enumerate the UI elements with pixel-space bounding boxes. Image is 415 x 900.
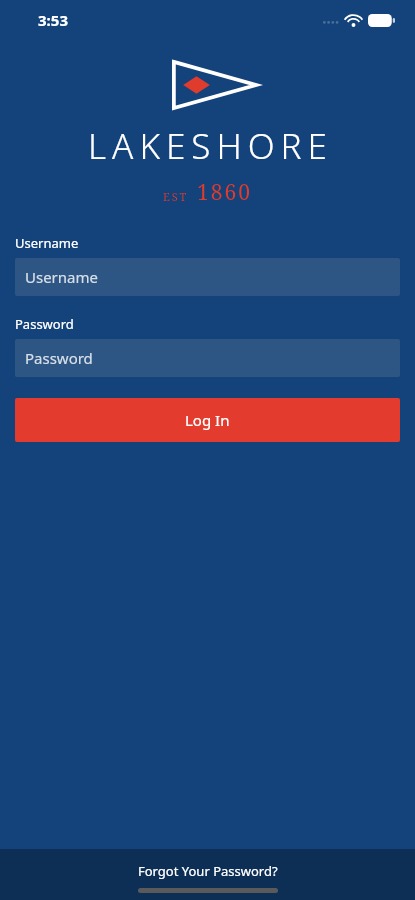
button[interactable]: Log In xyxy=(15,398,400,442)
staticText: 1860 xyxy=(197,178,252,207)
staticText: LAKESHORE xyxy=(88,122,333,170)
staticText: EST xyxy=(163,189,189,204)
staticText: Password xyxy=(25,348,93,368)
other: Lakeshore pennant logo xyxy=(172,60,258,110)
staticText: Username xyxy=(15,234,79,252)
staticText: Forgot Your Password? xyxy=(138,862,278,880)
staticText: 3:53 xyxy=(38,10,68,30)
staticText: Password xyxy=(15,315,74,333)
button[interactable]: Password xyxy=(15,339,400,377)
staticText: Username xyxy=(25,267,98,287)
button[interactable]: Username xyxy=(15,258,400,296)
button[interactable]: Forgot Your Password? xyxy=(130,860,286,882)
staticText: Log In xyxy=(185,410,230,430)
